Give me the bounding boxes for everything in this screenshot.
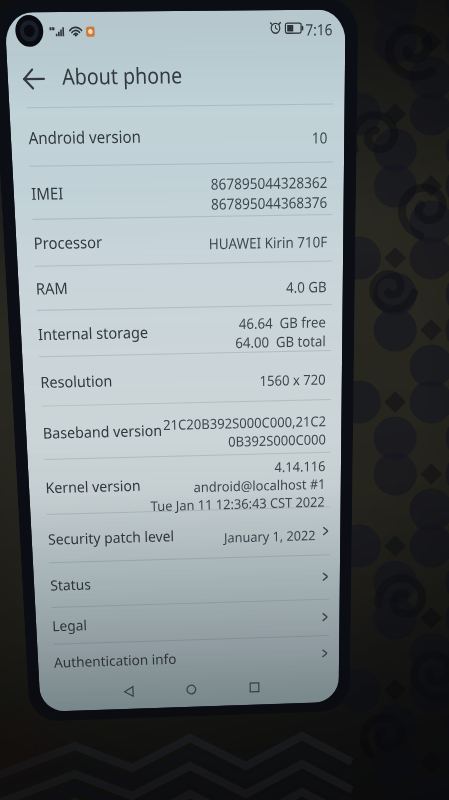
button[interactable]: Baseband version <box>25 399 342 459</box>
staticText: Kernel version <box>45 475 141 497</box>
staticText: Android version <box>28 124 142 148</box>
staticText: 867895044328362 <box>210 172 328 194</box>
button[interactable]: Android version <box>9 103 345 166</box>
staticText: 64.00 GB total <box>235 331 327 352</box>
staticText: 10 <box>312 127 328 148</box>
button[interactable]: Back <box>15 58 52 98</box>
staticText: Status <box>50 574 92 594</box>
button[interactable]: Processor <box>15 214 343 266</box>
staticText: 867895044368376 <box>211 192 328 214</box>
staticText: 4.0 GB <box>286 277 327 297</box>
staticText: 46.64 GB free <box>239 312 327 333</box>
button[interactable]: Resolution <box>22 350 342 406</box>
button[interactable]: Recents <box>237 669 272 705</box>
staticText: Legal <box>52 615 88 635</box>
button[interactable]: Status <box>33 554 340 607</box>
staticText: Security patch level <box>47 525 175 548</box>
staticText: Authentication info <box>53 649 177 671</box>
button[interactable]: Legal <box>35 598 340 644</box>
staticText: January 1, 2022 <box>224 526 316 546</box>
staticText: Internal storage <box>37 321 149 344</box>
staticText: 4.14.116 <box>274 457 326 476</box>
button[interactable]: Home <box>174 671 209 707</box>
staticText: HUAWEI Kirin 710F <box>209 232 327 253</box>
staticText: Resolution <box>40 370 113 392</box>
button[interactable]: IMEI <box>12 161 344 219</box>
staticText: About phone <box>61 60 183 91</box>
staticText: IMEI <box>31 181 64 204</box>
button[interactable]: RAM <box>18 260 343 310</box>
staticText: android@localhost #1 <box>193 475 326 496</box>
button[interactable]: Back <box>111 673 147 709</box>
button[interactable]: Kernel version <box>28 452 341 514</box>
staticText: 1560 x 720 <box>259 370 326 390</box>
staticText: 21C20B392S000C000,21C2 <box>163 412 326 434</box>
staticText: 7:16 <box>305 18 333 40</box>
button[interactable]: Security patch level <box>30 506 340 563</box>
staticText: Baseband version <box>42 419 162 443</box>
staticText: Processor <box>33 230 103 253</box>
button[interactable]: Authentication info <box>37 635 339 680</box>
staticText: RAM <box>35 276 68 299</box>
button[interactable]: Internal storage <box>20 304 343 357</box>
staticText: 0B392S000C000 <box>228 430 326 451</box>
staticText: Tue Jan 11 12:36:43 CST 2022 <box>150 492 325 515</box>
